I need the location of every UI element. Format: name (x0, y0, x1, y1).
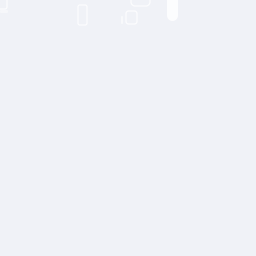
button[interactable]: Back (0, 0, 7, 9)
button[interactable]: Document (78, 5, 87, 25)
button[interactable]: Lock (126, 11, 137, 24)
